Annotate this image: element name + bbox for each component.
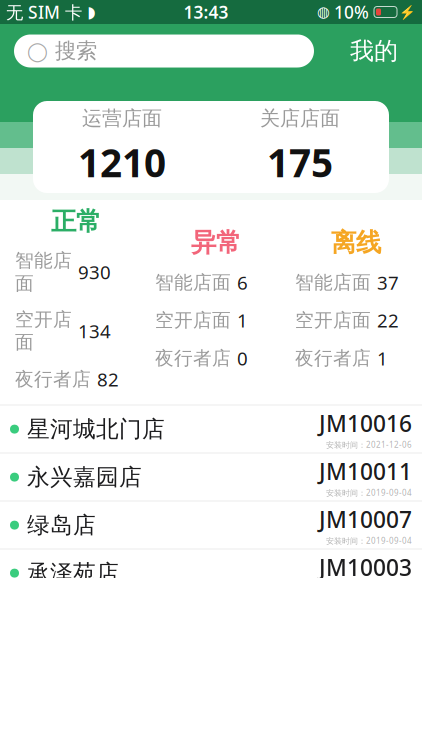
staticText: 10% [334, 0, 369, 23]
staticText: 夜行者店 [295, 347, 371, 370]
staticText: 0 [237, 346, 248, 371]
staticText: ⚡ [399, 4, 416, 20]
staticText: 正常 [51, 206, 101, 237]
staticText: 离线 [331, 227, 381, 258]
button[interactable]: 我的 [344, 28, 404, 74]
staticText: JM10016 [319, 408, 412, 438]
staticText: 异常 [191, 227, 241, 258]
staticText: 1 [377, 346, 388, 371]
button[interactable]: 星河城北门店 [0, 406, 422, 454]
staticText: 夜行者店 [155, 347, 231, 370]
staticText: 星河城北门店 [27, 415, 165, 443]
staticText: 安装时间：2019-09-04 [326, 487, 412, 498]
staticText: 1 [237, 308, 248, 333]
staticText: 夜行者店 [15, 368, 91, 391]
staticText: JM10007 [319, 504, 412, 534]
staticText: 空开店面 [15, 308, 72, 354]
button[interactable]: 永兴嘉园店 [0, 454, 422, 502]
staticText: 关店店面 [260, 106, 340, 131]
staticText: 智能店面 [155, 271, 231, 294]
staticText: 82 [97, 367, 119, 392]
staticText: 空开店面 [155, 309, 231, 332]
staticText: 1210 [78, 137, 166, 188]
button[interactable]: 承泽苑店 [0, 550, 422, 598]
staticText: 37 [377, 270, 399, 295]
staticText: 22 [377, 308, 399, 333]
staticText: 安装时间：2019-09-04 [326, 535, 412, 546]
button[interactable]: 绿岛店 [0, 502, 422, 550]
staticText: 承泽苑店 [27, 559, 119, 587]
staticText: 搜索 [55, 38, 97, 64]
staticText: 安装时间：2021-12-06 [326, 439, 412, 450]
staticText: 空开店面 [295, 309, 371, 332]
staticText: ◯ [27, 40, 48, 62]
button[interactable]: ◯ [14, 34, 314, 67]
staticText: 运营店面 [82, 106, 162, 131]
staticText: 我的 [350, 36, 398, 66]
staticText: 13:43 [183, 0, 228, 23]
staticText: 绿岛店 [27, 511, 96, 539]
staticText: 智能店面 [295, 271, 371, 294]
staticText: 无 SIM 卡 [6, 0, 82, 23]
staticText: 永兴嘉园店 [27, 463, 142, 491]
staticText: 175 [267, 137, 333, 188]
staticText: JM10003 [319, 552, 412, 582]
staticText: 智能店面 [15, 249, 72, 295]
staticText: ◗ [87, 3, 95, 21]
staticText: 6 [237, 270, 248, 295]
staticText: 930 [78, 260, 111, 284]
staticText: 134 [78, 318, 111, 343]
staticText: ◍ [317, 4, 330, 20]
staticText: JM10011 [319, 456, 412, 486]
